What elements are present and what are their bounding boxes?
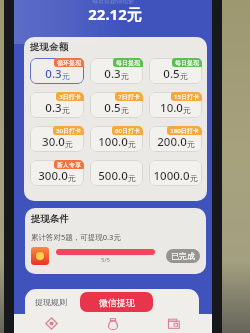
- staticText: 元: [62, 105, 70, 115]
- button[interactable]: 已完成: [166, 249, 200, 263]
- button[interactable]: 100.0: [90, 126, 143, 152]
- button[interactable]: 0.3: [90, 58, 143, 84]
- staticText: 元: [68, 173, 76, 183]
- staticText: 微信提现: [99, 297, 135, 308]
- staticText: 元: [183, 105, 191, 115]
- button[interactable]: 0.3: [30, 92, 84, 118]
- staticText: 元: [121, 71, 129, 81]
- staticText: 22.12元: [18, 4, 212, 24]
- button[interactable]: 0.3: [30, 58, 84, 84]
- staticText: 30日打卡: [56, 127, 81, 135]
- staticText: 5/5: [56, 256, 155, 264]
- staticText: 30.0: [42, 134, 65, 150]
- staticText: 300.0: [38, 168, 68, 184]
- staticText: 提现金额: [30, 41, 68, 53]
- button[interactable]: 答题: [20, 314, 82, 333]
- button[interactable]: 300.0: [30, 160, 84, 186]
- staticText: 10.0: [160, 100, 183, 116]
- button[interactable]: 10.0: [149, 92, 202, 118]
- button[interactable]: 200.0: [149, 126, 202, 152]
- staticText: 60日打卡: [115, 127, 140, 135]
- staticText: 200.0: [157, 134, 187, 150]
- button[interactable]: 提现规则: [28, 293, 72, 311]
- button[interactable]: 0.5: [149, 58, 202, 84]
- staticText: 元: [190, 173, 198, 183]
- button[interactable]: 微信提现: [80, 292, 153, 312]
- staticText: 元: [128, 173, 136, 183]
- staticText: 7日打卡: [118, 93, 140, 101]
- staticText: 0.5: [104, 100, 121, 116]
- staticText: 3日打卡: [59, 93, 81, 101]
- staticText: 元: [180, 71, 188, 81]
- button[interactable]: 30.0: [30, 126, 84, 152]
- staticText: 0.5: [163, 66, 180, 82]
- staticText: 每日提现: [116, 59, 140, 67]
- staticText: 180日打卡: [170, 127, 199, 135]
- staticText: 元: [128, 139, 136, 149]
- staticText: 已完成: [171, 251, 195, 261]
- staticText: 元: [65, 139, 73, 149]
- staticText: 每日答题领现金: [14, 0, 212, 5]
- button[interactable]: 我的: [143, 314, 204, 333]
- staticText: 循环提现: [57, 59, 81, 67]
- staticText: 0.3: [45, 66, 62, 82]
- staticText: 元: [62, 71, 70, 81]
- button[interactable]: 0.5: [90, 92, 143, 118]
- staticText: 每日提现: [175, 59, 199, 67]
- staticText: 提现条件: [31, 213, 69, 225]
- staticText: 500.0: [98, 168, 128, 184]
- button[interactable]: 提现: [82, 314, 143, 333]
- staticText: 提现规则: [35, 297, 67, 307]
- button[interactable]: 1000.0: [149, 160, 202, 186]
- button[interactable]: 500.0: [90, 160, 143, 186]
- staticText: 累计答对5题，可提现0.3元: [31, 232, 121, 242]
- staticText: 1000.0: [153, 168, 190, 184]
- staticText: 15日打卡: [174, 93, 199, 101]
- staticText: 元: [187, 139, 195, 149]
- staticText: 新人专享: [57, 161, 81, 169]
- staticText: 元: [121, 105, 129, 115]
- staticText: 0.3: [45, 100, 62, 116]
- staticText: 100.0: [98, 134, 128, 150]
- staticText: 0.3: [104, 66, 121, 82]
